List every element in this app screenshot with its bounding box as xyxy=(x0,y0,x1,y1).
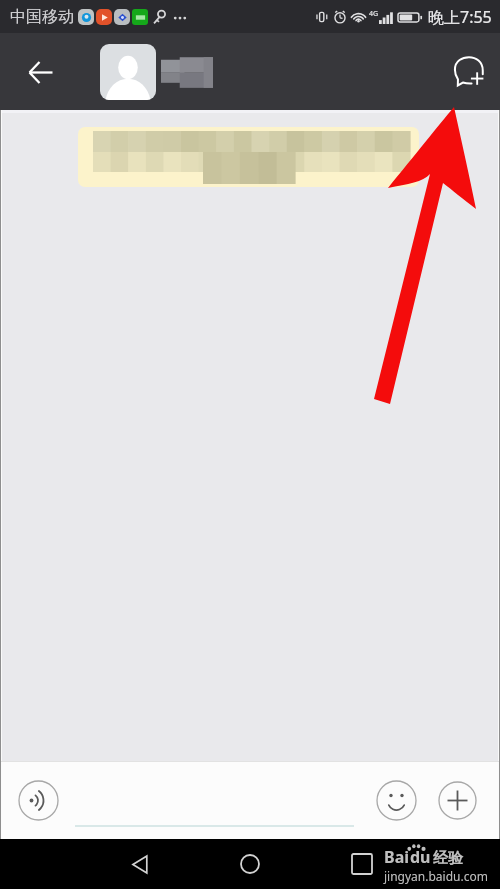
staticText: Bai xyxy=(384,846,410,868)
button[interactable]: Emoji xyxy=(374,778,418,822)
button[interactable]: Voice message xyxy=(16,778,60,822)
button[interactable]: More options xyxy=(436,779,478,821)
button[interactable]: New chat xyxy=(446,49,492,95)
staticText: jingyan.baidu.com xyxy=(384,868,488,884)
button[interactable]: Back xyxy=(15,47,65,97)
button[interactable] xyxy=(100,44,213,100)
button[interactable]: Home xyxy=(230,844,270,884)
button[interactable]: Recent apps xyxy=(342,844,382,884)
staticText: 4G xyxy=(369,9,379,19)
staticText: 经验 xyxy=(433,849,463,868)
staticText: 晚上7:55 xyxy=(428,6,492,28)
button[interactable]: Back xyxy=(120,844,160,884)
button[interactable] xyxy=(78,127,419,187)
staticText: 中国移动 xyxy=(10,7,74,27)
staticText: du xyxy=(410,846,431,868)
